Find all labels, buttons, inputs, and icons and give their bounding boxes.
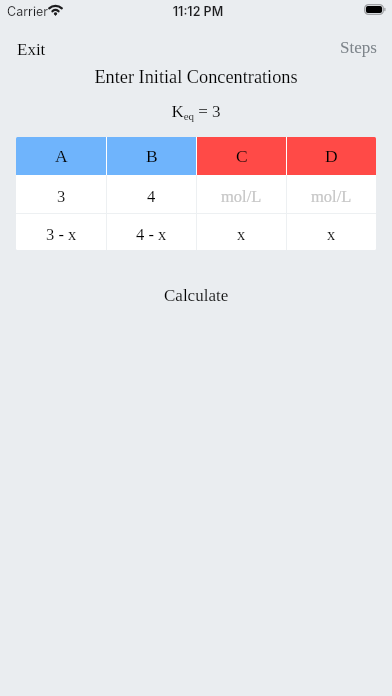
staticText: Calculate	[164, 286, 229, 305]
staticText: A	[55, 146, 68, 165]
button[interactable]: A	[16, 137, 106, 175]
button[interactable]: Steps	[326, 35, 392, 64]
button[interactable]: D	[287, 137, 376, 175]
staticText: 3 - x	[46, 225, 77, 243]
button[interactable]: mol/L	[287, 175, 376, 213]
button[interactable]: x	[197, 214, 286, 250]
button[interactable]: 4	[107, 175, 196, 213]
button[interactable]: Exit	[0, 35, 60, 64]
staticText: mol/L	[221, 187, 262, 205]
button[interactable]: Calculate	[146, 281, 247, 310]
button[interactable]: C	[197, 137, 286, 175]
staticText: Carrier	[7, 4, 48, 19]
staticText: x	[237, 225, 246, 243]
staticText: D	[325, 146, 338, 165]
button[interactable]: B	[107, 137, 196, 175]
staticText: mol/L	[311, 187, 352, 205]
staticText: B	[146, 146, 158, 165]
button[interactable]: 3	[16, 175, 106, 213]
staticText: Exit	[17, 40, 46, 59]
staticText: Enter Initial Concentrations	[0, 67, 392, 87]
staticText: Keq = 3	[0, 102, 392, 123]
staticText: 3	[57, 187, 66, 205]
button[interactable]: x	[287, 214, 376, 250]
staticText: x	[327, 225, 336, 243]
staticText: C	[236, 146, 248, 165]
button[interactable]: mol/L	[197, 175, 286, 213]
button[interactable]: 3 - x	[16, 214, 106, 250]
button[interactable]: 4 - x	[107, 214, 196, 250]
staticText: 4	[147, 187, 156, 205]
staticText: 4 - x	[136, 225, 167, 243]
staticText: Steps	[340, 38, 377, 57]
staticText: 11:12 PM	[2, 4, 392, 19]
